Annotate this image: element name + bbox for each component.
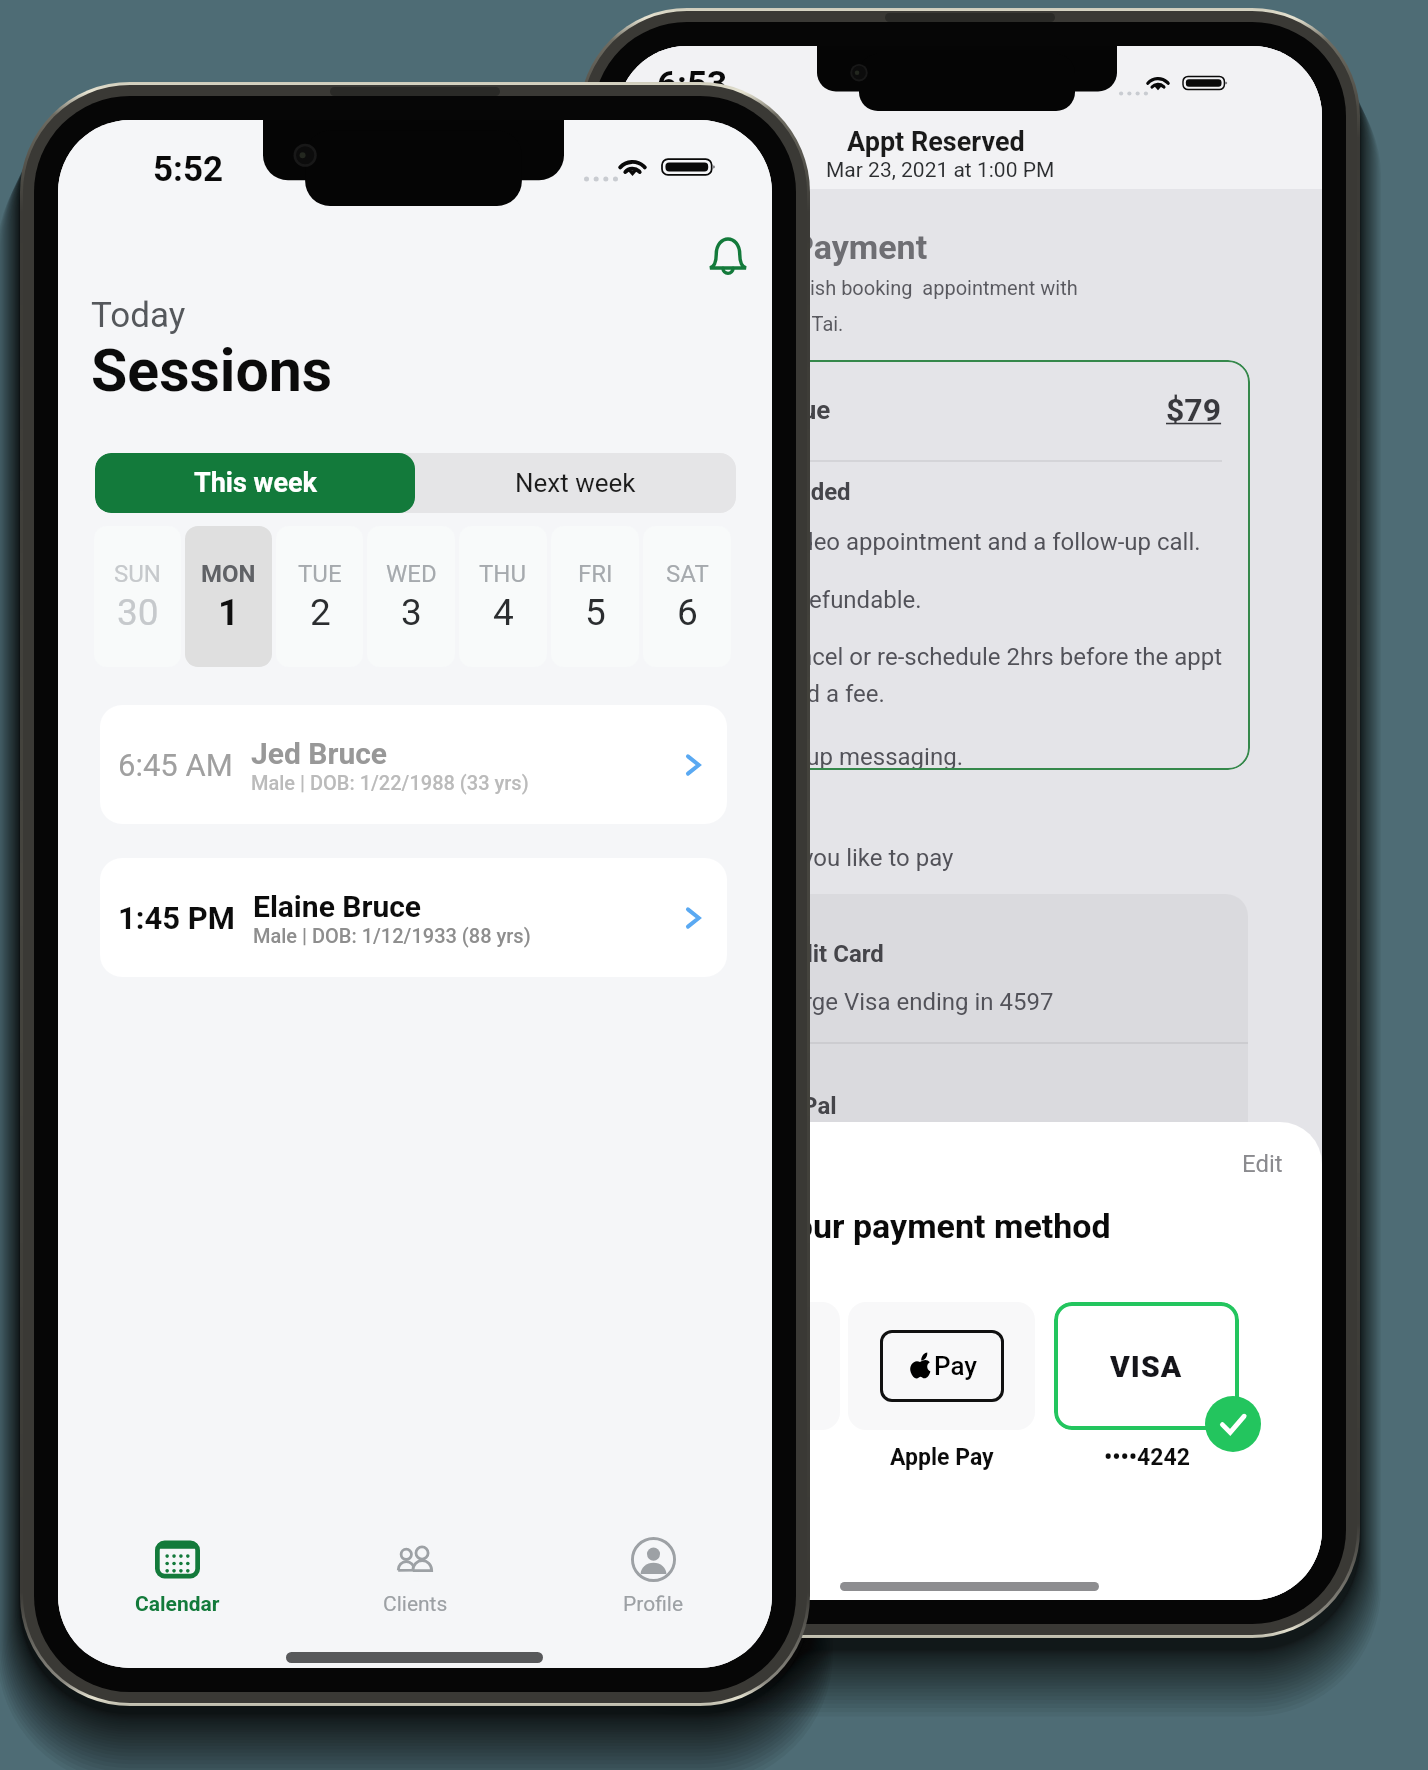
staticText: Clients: [383, 1592, 448, 1617]
staticText: Today: [91, 295, 186, 336]
button[interactable]: MON: [185, 526, 272, 667]
button[interactable]: THU: [459, 526, 547, 667]
staticText: How would you like to pay: [677, 844, 954, 872]
staticText: VISA: [1110, 1349, 1183, 1384]
button[interactable]: Edit: [1232, 1142, 1293, 1186]
staticText: This week: [194, 467, 317, 499]
staticText: Edit: [1242, 1150, 1283, 1178]
staticText: Choose your payment method: [653, 1206, 1111, 1246]
button[interactable]: Pay: [848, 1302, 1035, 1430]
staticText: PayPal: [762, 1092, 837, 1120]
staticText: 2: [310, 591, 331, 634]
staticText: Mar 23, 2021 at 1:00 PM: [826, 158, 1055, 183]
button[interactable]: Next week: [415, 453, 736, 513]
staticText: Next week: [515, 468, 636, 498]
staticText: Appt fee due: [682, 395, 831, 425]
staticText: 6: [677, 591, 698, 634]
button[interactable]: SAT: [643, 526, 731, 667]
button[interactable]: [653, 1302, 840, 1430]
staticText: Apple Pay: [890, 1444, 994, 1471]
button[interactable]: 1:45 PM: [100, 858, 727, 977]
staticText: Charge Visa ending in 4597: [762, 988, 1054, 1016]
staticText: FRI: [578, 560, 613, 588]
staticText: Male | DOB: 1/12/1933 (88 yrs): [253, 924, 531, 947]
staticText: MON: [201, 560, 256, 588]
staticText: SAT: [666, 560, 709, 588]
staticText: 5:52: [153, 149, 224, 190]
button[interactable]: VISA: [1054, 1302, 1239, 1430]
staticText: $79: [1166, 391, 1222, 429]
staticText: Credit Card: [762, 940, 884, 968]
staticText: Calendar: [135, 1592, 220, 1617]
staticText: SUN: [114, 560, 161, 588]
staticText: You can cancel or re-schedule 2hrs befor…: [682, 643, 1223, 671]
staticText: 5: [585, 591, 606, 634]
staticText: What's included: [682, 478, 851, 506]
staticText: 1: [218, 591, 240, 634]
staticText: Profile: [623, 1592, 684, 1617]
staticText: Cash: [720, 1444, 773, 1471]
staticText: Free follow-up messaging.: [682, 743, 963, 770]
button[interactable]: Profile: [534, 1522, 772, 1632]
button[interactable]: Clients: [296, 1522, 534, 1632]
staticText: Sessions: [91, 336, 333, 405]
staticText: Dr. Tai.: [783, 312, 844, 335]
button[interactable]: Calendar: [58, 1522, 296, 1632]
staticText: Pay: [934, 1351, 978, 1381]
button[interactable]: This week: [95, 453, 415, 513]
staticText: Payment: [792, 227, 928, 267]
staticText: WED: [386, 560, 437, 588]
staticText: TUE: [298, 560, 342, 588]
staticText: 1:45 PM: [118, 900, 235, 936]
staticText: 3: [401, 591, 422, 634]
button[interactable]: TUE: [276, 526, 363, 667]
staticText: Jed Bruce: [251, 736, 388, 771]
button[interactable]: 6:45 AM: [100, 705, 727, 824]
staticText: 6:45 AM: [118, 747, 233, 783]
staticText: 30: [117, 591, 159, 634]
staticText: time to avoid a fee.: [682, 680, 885, 708]
staticText: ••••4242: [1104, 1444, 1190, 1471]
staticText: 4: [493, 591, 514, 634]
staticText: Finish booking appointment with: [783, 276, 1078, 299]
staticText: Fee is fully refundable.: [682, 586, 922, 614]
button[interactable]: SUN: [94, 526, 181, 667]
staticText: A 30 min video appointment and a follow-…: [682, 528, 1201, 556]
button[interactable]: WED: [367, 526, 455, 667]
staticText: Male | DOB: 1/22/1988 (33 yrs): [251, 771, 529, 794]
staticText: Appt Reserved: [847, 126, 1025, 158]
staticText: 6:53: [657, 64, 728, 105]
staticText: THU: [479, 560, 527, 588]
button[interactable]: FRI: [551, 526, 639, 667]
button[interactable]: Notifications: [690, 219, 766, 295]
staticText: Elaine Bruce: [253, 889, 422, 924]
